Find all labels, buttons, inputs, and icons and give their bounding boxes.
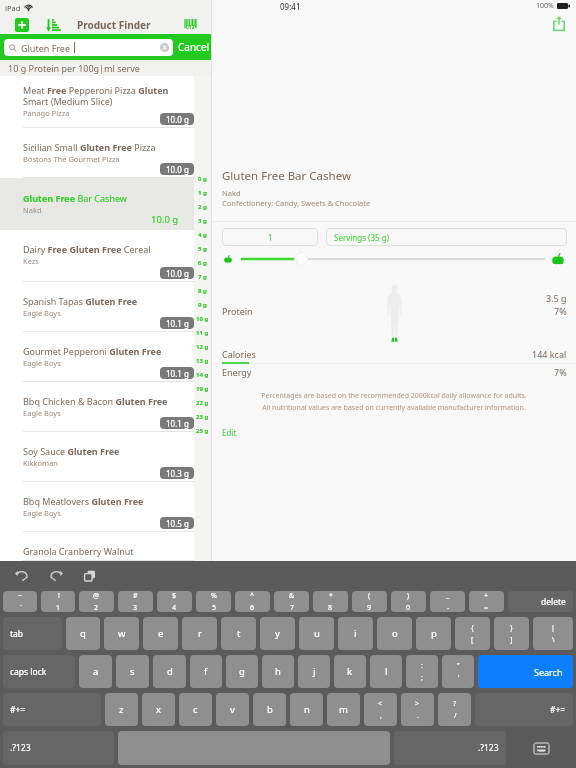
button[interactable]: Undo xyxy=(12,566,32,586)
staticText: Nakd xyxy=(222,188,241,198)
button[interactable]: Granola Cranberry Walnut xyxy=(0,532,194,561)
button[interactable]: Bbq Meatlovers Gluten Free xyxy=(0,482,194,532)
button[interactable]: caps lock xyxy=(3,655,75,688)
button[interactable]: .?123 xyxy=(3,731,114,765)
button[interactable]: z xyxy=(105,693,138,726)
staticText: 10.1 g xyxy=(166,368,189,379)
button[interactable]: Meat Free Pepperoni Pizza Gluten Smart (… xyxy=(0,76,194,128)
button[interactable]: c xyxy=(179,693,212,726)
button[interactable]: ) xyxy=(391,591,426,612)
button[interactable]: w xyxy=(104,617,139,650)
staticText: Edit xyxy=(222,427,237,438)
button[interactable]: Scan barcode xyxy=(182,17,198,33)
button[interactable]: ( xyxy=(352,591,387,612)
button[interactable]: f xyxy=(190,655,222,688)
button[interactable]: Cancel xyxy=(178,40,210,54)
staticText: .?123 xyxy=(478,742,499,754)
button[interactable]: q xyxy=(66,617,100,650)
button[interactable]: Gourmet Pepperoni Gluten Free xyxy=(0,332,194,382)
staticText: 2 g xyxy=(198,203,207,211)
button[interactable]: Spanish Tapas Gluten Free xyxy=(0,282,194,332)
button[interactable]: t xyxy=(221,617,256,650)
button[interactable]: delete xyxy=(508,591,573,612)
button[interactable]: | xyxy=(533,617,573,650)
button[interactable]: Add product xyxy=(15,18,29,32)
button[interactable]: Redo xyxy=(46,566,66,586)
button[interactable]: Soy Sauce Gluten Free xyxy=(0,432,194,482)
button[interactable]: tab xyxy=(3,617,62,650)
button[interactable]: o xyxy=(377,617,412,650)
staticText: g xyxy=(239,665,245,678)
button[interactable]: & xyxy=(274,591,309,612)
button[interactable]: l xyxy=(370,655,402,688)
staticText: Panago Pizza xyxy=(23,108,70,118)
button[interactable]: a xyxy=(79,655,112,688)
button[interactable]: p xyxy=(416,617,451,650)
button[interactable]: * xyxy=(313,591,348,612)
button[interactable]: ^ xyxy=(235,591,270,612)
button[interactable]: h xyxy=(262,655,294,688)
button[interactable]: < xyxy=(364,693,397,726)
button[interactable]: i xyxy=(338,617,373,650)
button[interactable]: k xyxy=(334,655,366,688)
button[interactable]: Dairy Free Gluten Free Cereal xyxy=(0,230,194,282)
button[interactable]: u xyxy=(299,617,334,650)
button[interactable]: Serving amount slider xyxy=(294,252,308,266)
button[interactable]: ~ xyxy=(3,591,37,612)
button[interactable]: Hide keyboard xyxy=(508,731,575,765)
staticText: > xyxy=(415,699,420,709)
staticText: v xyxy=(230,703,235,716)
button[interactable]: Bbq Chicken & Bacon Gluten Free xyxy=(0,382,194,432)
staticText: $ xyxy=(172,591,177,601)
button[interactable]: r xyxy=(182,617,217,650)
button[interactable]: Search xyxy=(478,655,573,688)
staticText: 0 g xyxy=(198,175,207,183)
button[interactable]: ! xyxy=(41,591,75,612)
button[interactable]: # xyxy=(118,591,153,612)
button[interactable]: y xyxy=(260,617,295,650)
staticText: 09:41 xyxy=(280,1,301,12)
staticText: Sicilian Small Gluten Free Pizza xyxy=(23,141,156,153)
button[interactable]: + xyxy=(469,591,504,612)
staticText: Search xyxy=(534,666,563,678)
button[interactable]: { xyxy=(455,617,490,650)
button[interactable]: Paste xyxy=(80,566,100,586)
button[interactable]: 1 xyxy=(222,228,318,246)
button[interactable]: e xyxy=(143,617,178,650)
button[interactable]: g xyxy=(226,655,258,688)
staticText: Spanish Tapas Gluten Free xyxy=(23,295,138,307)
button[interactable]: Servings (35 g) xyxy=(326,228,567,246)
button[interactable]: Share xyxy=(547,12,570,35)
button[interactable]: v xyxy=(216,693,249,726)
button[interactable]: .?123 xyxy=(394,731,506,765)
button[interactable]: m xyxy=(327,693,360,726)
staticText: Servings (35 g) xyxy=(334,232,390,243)
button[interactable]: $ xyxy=(157,591,192,612)
button[interactable]: #+= xyxy=(475,693,573,726)
button[interactable]: } xyxy=(494,617,529,650)
button[interactable]: Gluten Free xyxy=(4,39,173,56)
button[interactable]: s xyxy=(116,655,149,688)
button[interactable]: #+= xyxy=(3,693,101,726)
button[interactable]: Gluten Free Bar Cashew xyxy=(0,178,194,230)
button[interactable]: _ xyxy=(430,591,465,612)
button[interactable]: > xyxy=(401,693,434,726)
button[interactable]: n xyxy=(290,693,323,726)
button[interactable]: ? xyxy=(438,693,471,726)
button[interactable]: b xyxy=(253,693,286,726)
button[interactable]: : xyxy=(406,655,438,688)
button[interactable]: Sort xyxy=(46,17,61,32)
button[interactable]: Edit xyxy=(222,427,237,438)
button[interactable]: x xyxy=(142,693,175,726)
staticText: 10 g Protein per 100g|ml serve xyxy=(8,62,140,74)
button[interactable]: % xyxy=(196,591,231,612)
button[interactable]: j xyxy=(298,655,330,688)
staticText: 7% xyxy=(554,366,567,378)
button[interactable]: @ xyxy=(79,591,114,612)
staticText: 14 g xyxy=(196,371,209,379)
button[interactable]: d xyxy=(153,655,186,688)
button[interactable]: Sicilian Small Gluten Free Pizza xyxy=(0,128,194,178)
button[interactable]: ” xyxy=(442,655,474,688)
staticText: 2 xyxy=(94,603,99,612)
